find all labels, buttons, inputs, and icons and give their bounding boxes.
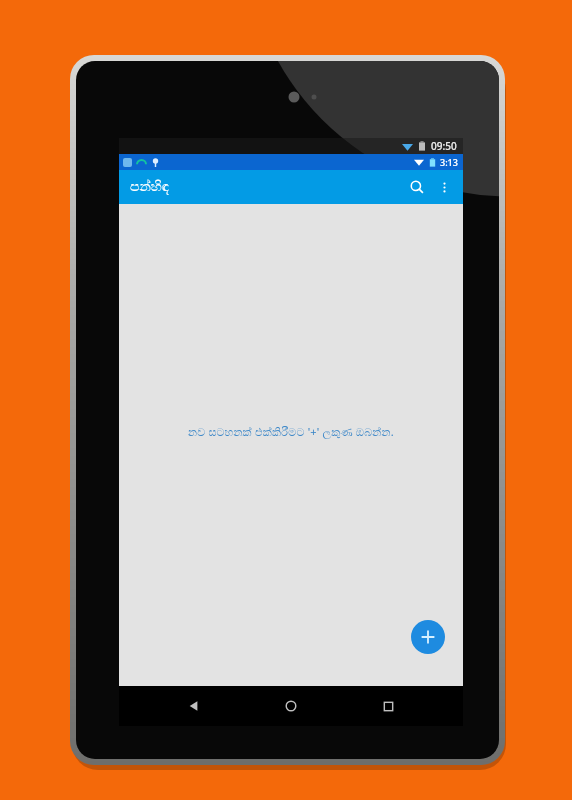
staticText: නව සටහනක් එක්කිරීමට '+' ලකුණ ඔබන්න. <box>188 424 394 439</box>
staticText: 3:13 <box>440 156 458 168</box>
button[interactable]: Back <box>172 686 216 726</box>
button[interactable]: Recent apps <box>366 686 410 726</box>
staticText: පන්හිඳ <box>130 180 170 194</box>
button[interactable]: Home <box>269 686 313 726</box>
button[interactable]: Search <box>403 173 431 201</box>
staticText: 09:50 <box>431 139 457 153</box>
button[interactable]: Add new note <box>411 620 445 654</box>
button[interactable]: More options <box>431 174 457 200</box>
